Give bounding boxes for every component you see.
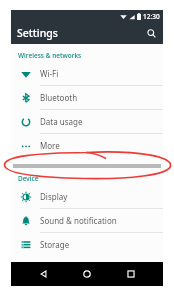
button[interactable]: More	[11, 134, 163, 157]
staticText: 12:30	[143, 12, 160, 21]
staticText: Device	[18, 174, 39, 183]
button[interactable]: Storage	[11, 233, 163, 256]
button[interactable]: Bluetooth	[11, 86, 163, 110]
staticText: Storage	[40, 239, 70, 250]
staticText: Sound & notification	[40, 215, 117, 226]
button[interactable]: Sound & notification	[11, 209, 163, 233]
staticText: Settings	[17, 26, 58, 40]
button[interactable]: Search	[142, 24, 160, 42]
button[interactable]: Display	[11, 185, 163, 209]
staticText: Display	[40, 191, 68, 202]
staticText: Bluetooth	[40, 92, 78, 103]
staticText: More	[40, 140, 60, 151]
button[interactable]: Recent apps	[120, 263, 142, 285]
button[interactable]: Back	[33, 263, 55, 285]
staticText: Wi-Fi	[40, 68, 59, 79]
button[interactable]: Data usage	[11, 110, 163, 134]
button[interactable]: Home	[76, 263, 98, 285]
staticText: Wireless & networks	[18, 51, 82, 60]
staticText: Data usage	[40, 116, 83, 127]
button[interactable]: Wi-Fi	[11, 62, 163, 86]
